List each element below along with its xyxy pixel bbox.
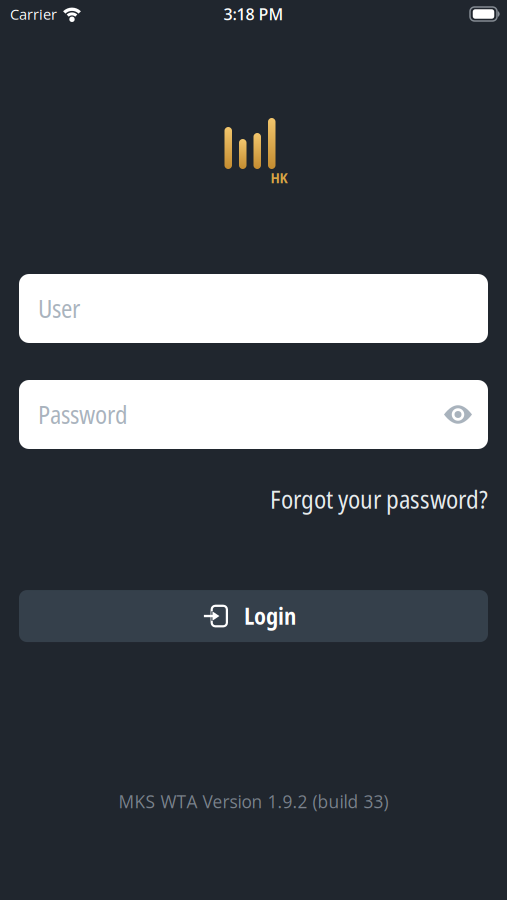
button[interactable]: Forgot your password? bbox=[270, 482, 488, 516]
button[interactable]: Show password bbox=[444, 405, 472, 423]
staticText: User bbox=[38, 292, 80, 325]
staticText: HK bbox=[270, 167, 287, 187]
button[interactable]: User bbox=[19, 274, 488, 343]
staticText: Carrier bbox=[10, 4, 57, 24]
button[interactable]: Password bbox=[19, 380, 488, 449]
staticText: Login bbox=[244, 601, 296, 631]
staticText: MKS WTA Version 1.9.2 (build 33) bbox=[118, 790, 388, 813]
staticText: 3:18 PM bbox=[223, 3, 283, 25]
button[interactable]: Login bbox=[19, 590, 488, 642]
staticText: Forgot your password? bbox=[270, 482, 488, 516]
staticText: Password bbox=[38, 398, 128, 431]
